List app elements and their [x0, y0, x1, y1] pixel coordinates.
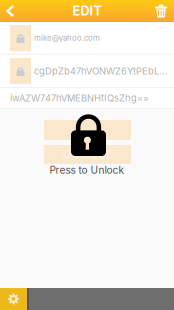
staticText: GOOGLE — [62, 147, 112, 162]
button[interactable]: iwAZW747hVMEBNHtIQsZhg== — [0, 88, 174, 108]
button[interactable]: Delete — [144, 0, 174, 22]
staticText: mike@yahoo.com — [34, 33, 100, 43]
button[interactable]: Unlock — [71, 115, 106, 157]
button[interactable]: Back — [0, 0, 30, 22]
staticText: EDIT — [72, 3, 101, 19]
button[interactable]: Settings — [0, 288, 27, 310]
staticText: iwAZW747hVMEBNHtIQsZhg== — [10, 92, 149, 104]
staticText: cgDpZb47hVONWZ6YtPEbL... — [34, 65, 168, 77]
button[interactable]: cgDpZb47hVONWZ6YtPEbL... — [0, 55, 174, 87]
button[interactable]: mike@yahoo.com — [0, 22, 174, 54]
staticText: Press to Unlock — [49, 164, 124, 176]
